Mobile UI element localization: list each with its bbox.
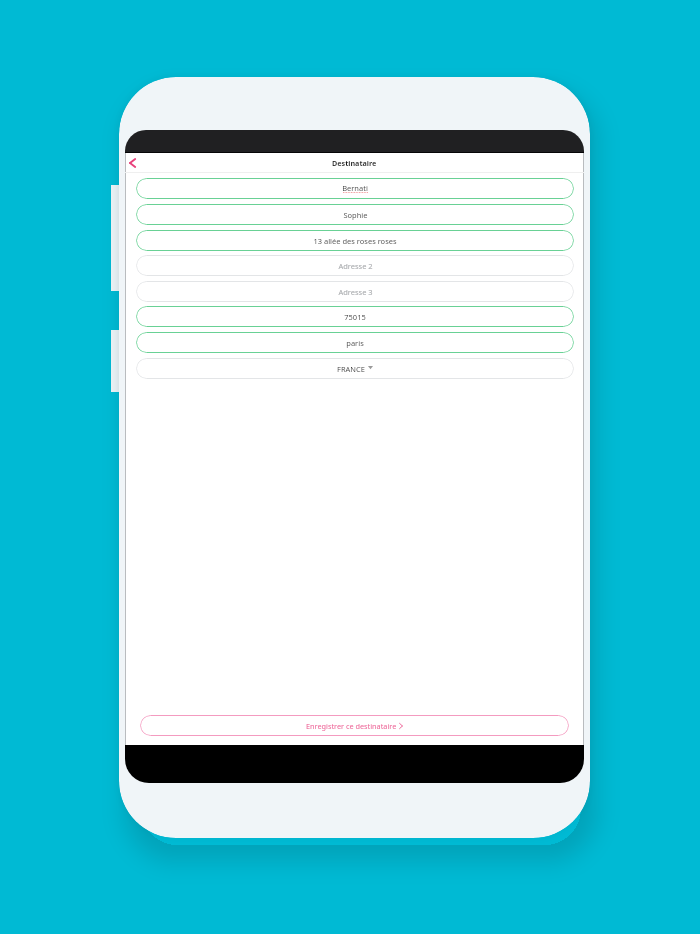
- button[interactable]: Back: [125, 153, 142, 173]
- staticText: Destinataire: [332, 158, 377, 168]
- button[interactable]: FRANCE: [136, 358, 574, 379]
- staticText: Enregistrer ce destinataire: [306, 721, 397, 731]
- staticText: FRANCE: [337, 364, 365, 374]
- staticText: 75015: [344, 312, 366, 322]
- staticText: Adresse 2: [338, 261, 373, 271]
- button[interactable]: Adresse 2: [136, 255, 574, 276]
- staticText: paris: [346, 338, 364, 348]
- button[interactable]: 13 allée des roses roses: [136, 230, 574, 251]
- staticText: 13 allée des roses roses: [313, 236, 397, 246]
- button[interactable]: 75015: [136, 306, 574, 327]
- staticText: Adresse 3: [338, 287, 373, 297]
- button[interactable]: Enregistrer ce destinataire: [140, 715, 569, 736]
- button[interactable]: Sophie: [136, 204, 574, 225]
- button[interactable]: Bernati: [136, 178, 574, 199]
- staticText: Sophie: [343, 210, 368, 220]
- button[interactable]: Adresse 3: [136, 281, 574, 302]
- button[interactable]: paris: [136, 332, 574, 353]
- staticText: Bernati: [342, 183, 368, 193]
